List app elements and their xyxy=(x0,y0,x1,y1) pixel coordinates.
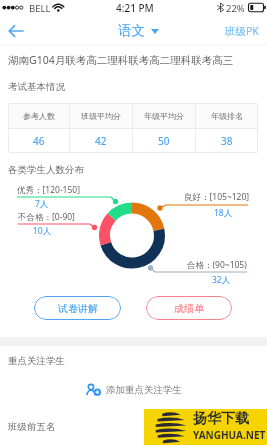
staticText: 班级平均分 xyxy=(81,111,121,121)
staticText: BELL xyxy=(29,2,51,15)
staticText: 18人 xyxy=(214,207,233,219)
staticText: 重点关注学生 xyxy=(8,355,65,367)
button[interactable]: Back xyxy=(4,19,28,43)
staticText: 32人 xyxy=(212,274,231,286)
staticText: 7人 xyxy=(35,198,49,210)
staticText: 46 xyxy=(33,134,45,148)
button[interactable]: 添加重点关注学生 xyxy=(0,382,267,398)
staticText: 试卷讲解 xyxy=(58,302,98,315)
staticText: 年级平均分 xyxy=(144,111,184,121)
staticText: 优秀：[120-150] xyxy=(17,184,81,196)
staticText: 班级前五名 xyxy=(8,421,56,433)
staticText: 成绩单 xyxy=(174,302,204,315)
staticText: 参考人数 xyxy=(23,111,55,121)
button[interactable]: 班级PK xyxy=(219,24,267,38)
staticText: 湖南G104月联考高二理科联考高二理科联考高三 xyxy=(8,53,234,67)
button[interactable]: 语文 xyxy=(116,22,161,39)
staticText: 22% xyxy=(226,2,245,15)
button[interactable]: 试卷讲解 xyxy=(34,296,121,320)
staticText: 50 xyxy=(158,134,170,148)
button[interactable]: 成绩单 xyxy=(146,296,232,320)
staticText: 年级排名 xyxy=(211,111,243,121)
staticText: 不合格：[0-90] xyxy=(18,211,75,223)
staticText: 4:21 PM xyxy=(116,1,154,15)
staticText: 良好：[105~120] xyxy=(184,191,250,203)
staticText: 扬华下载 xyxy=(193,410,249,428)
staticText: 10人 xyxy=(33,225,52,237)
staticText: 语文 xyxy=(118,22,145,39)
staticText: YANGHUA.NET xyxy=(193,428,266,442)
staticText: 添加重点关注学生 xyxy=(106,384,182,396)
staticText: 38 xyxy=(221,134,233,148)
staticText: 考试基本情况 xyxy=(8,81,65,93)
staticText: 42 xyxy=(95,134,107,148)
staticText: 班级PK xyxy=(225,24,259,38)
staticText: 各类学生人数分布 xyxy=(8,164,84,176)
staticText: 合格：(90~105) xyxy=(187,259,247,271)
